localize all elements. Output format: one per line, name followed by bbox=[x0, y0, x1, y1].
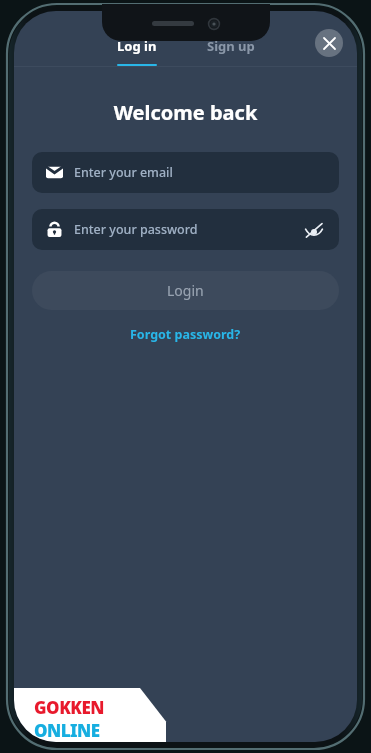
staticText: GOKKEN bbox=[34, 696, 104, 719]
button[interactable]: Enter your email bbox=[32, 152, 339, 193]
staticText: Login bbox=[167, 281, 204, 300]
staticText: Forgot password? bbox=[130, 326, 241, 343]
button[interactable]: Enter your password bbox=[32, 209, 339, 250]
button[interactable]: Login bbox=[32, 271, 339, 310]
button[interactable]: Show password bbox=[299, 215, 329, 245]
button[interactable]: Log in bbox=[103, 37, 171, 66]
staticText: Sign up bbox=[207, 37, 255, 55]
staticText: Log in bbox=[117, 37, 157, 55]
button[interactable]: Sign up bbox=[193, 37, 269, 66]
staticText: Enter your password bbox=[74, 221, 198, 238]
button[interactable]: Forgot password? bbox=[122, 323, 249, 346]
button[interactable]: Close bbox=[315, 29, 343, 57]
staticText: Welcome back bbox=[14, 99, 357, 126]
staticText: ONLINE bbox=[34, 719, 100, 742]
staticText: Enter your email bbox=[74, 164, 173, 181]
